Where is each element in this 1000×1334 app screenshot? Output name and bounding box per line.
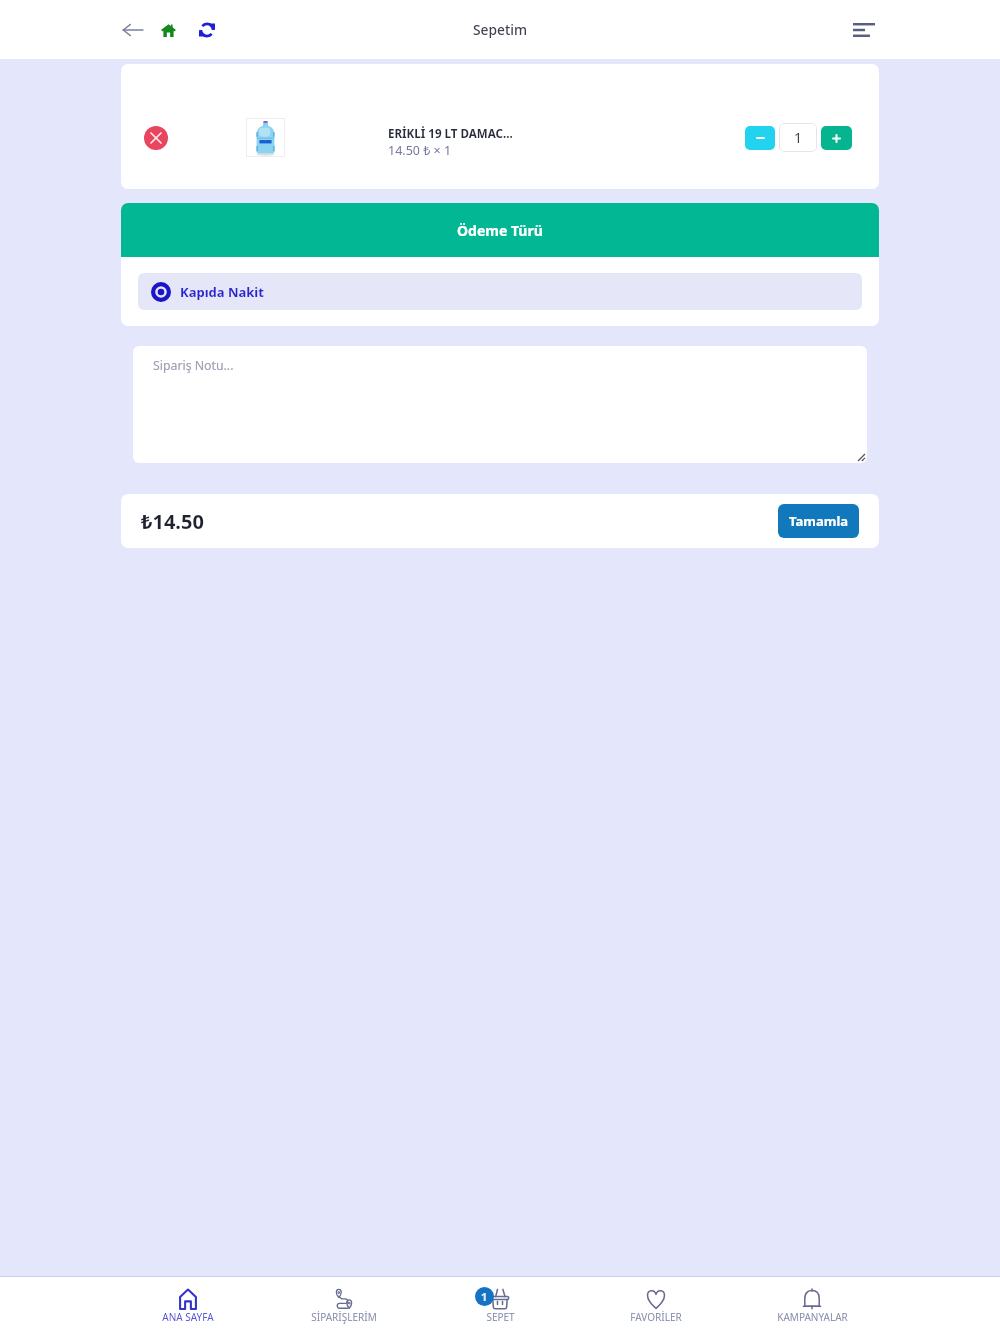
button[interactable]: Sipariş Notu... xyxy=(133,346,867,463)
staticText: Ödeme Türü xyxy=(457,221,543,240)
staticText: ₺14.50 xyxy=(141,508,204,535)
button[interactable]: Home xyxy=(150,12,186,48)
button[interactable]: Kapıda Nakit xyxy=(138,273,862,310)
button[interactable]: Decrease quantity xyxy=(745,126,775,150)
button[interactable]: Refresh xyxy=(189,12,225,48)
staticText: 1 xyxy=(794,128,803,147)
staticText: FAVORİLER xyxy=(630,1310,682,1324)
button[interactable]: Remove item xyxy=(144,126,168,150)
staticText: SEPET xyxy=(486,1310,515,1324)
button[interactable]: Menu xyxy=(844,10,884,50)
button[interactable]: FAVORİLER xyxy=(578,1277,734,1334)
button[interactable]: 1 xyxy=(422,1277,578,1334)
staticText: ANA SAYFA xyxy=(162,1310,214,1324)
staticText: KAMPANYALAR xyxy=(777,1310,848,1324)
staticText: 14.50 ₺ × 1 xyxy=(388,142,452,159)
staticText: Sipariş Notu... xyxy=(153,357,234,374)
button[interactable]: SİPARİŞLERİM xyxy=(266,1277,422,1334)
button[interactable]: KAMPANYALAR xyxy=(734,1277,890,1334)
staticText: Kapıda Nakit xyxy=(180,283,264,301)
button[interactable]: Back xyxy=(114,12,150,48)
staticText: SİPARİŞLERİM xyxy=(311,1310,377,1324)
staticText: Tamamla xyxy=(789,512,849,530)
button[interactable]: Tamamla xyxy=(778,504,859,538)
staticText: Sepetim xyxy=(473,20,528,39)
button[interactable]: ANA SAYFA xyxy=(110,1277,266,1334)
staticText: ERİKLİ 19 LT DAMAC... xyxy=(388,126,513,142)
staticText: 1 xyxy=(481,1289,488,1304)
button[interactable]: Increase quantity xyxy=(821,126,852,150)
